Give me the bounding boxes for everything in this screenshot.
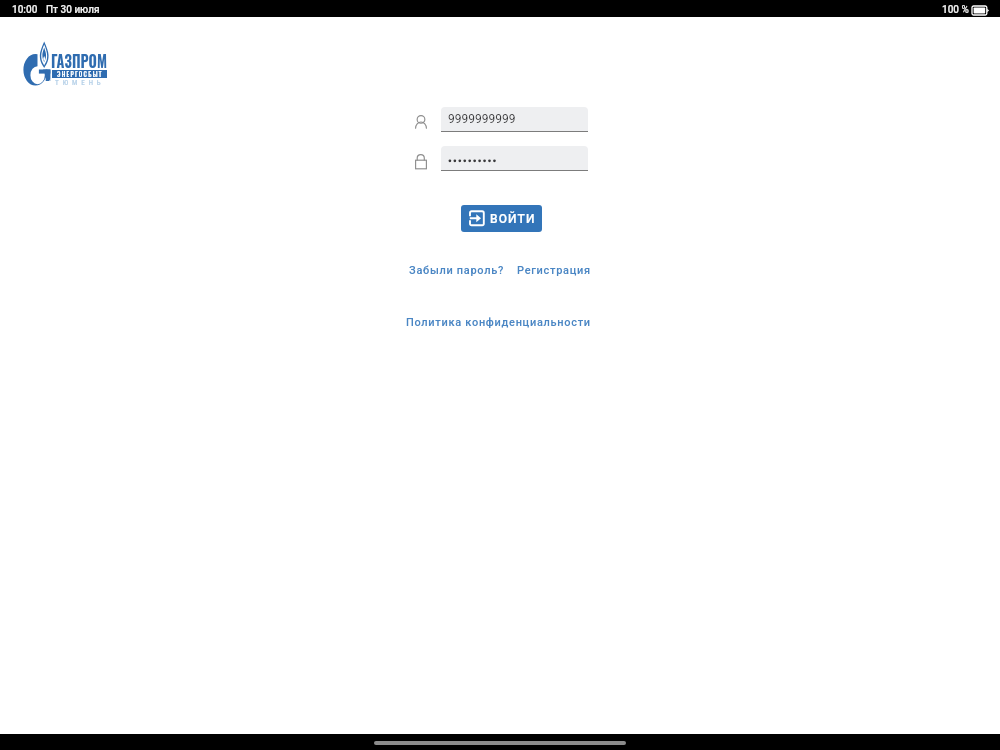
staticText: Регистрация: [517, 264, 591, 277]
staticText: 10:00: [12, 4, 38, 16]
staticText: Политика конфиденциальности: [406, 316, 591, 329]
staticText: Пт 30 июля: [46, 4, 100, 16]
staticText: ГАЗПРОМ: [51, 49, 107, 73]
staticText: 9999999999: [448, 112, 516, 126]
button[interactable]: Политика конфиденциальности: [406, 316, 591, 329]
staticText: Забыли пароль?: [409, 264, 505, 277]
staticText: 100 %: [942, 4, 969, 16]
button[interactable]: Забыли пароль?: [409, 264, 505, 277]
button[interactable]: Логин: [441, 107, 588, 132]
button[interactable]: Пароль: [441, 146, 588, 171]
button[interactable]: Регистрация: [517, 264, 591, 277]
staticText: ЭНЕРГОСБЫТ: [57, 70, 103, 78]
staticText: ТЮМЕНЬ: [55, 79, 105, 87]
button[interactable]: ВОЙТИ: [461, 205, 542, 232]
staticText: ВОЙТИ: [490, 212, 536, 226]
other: Home: [374, 741, 626, 745]
